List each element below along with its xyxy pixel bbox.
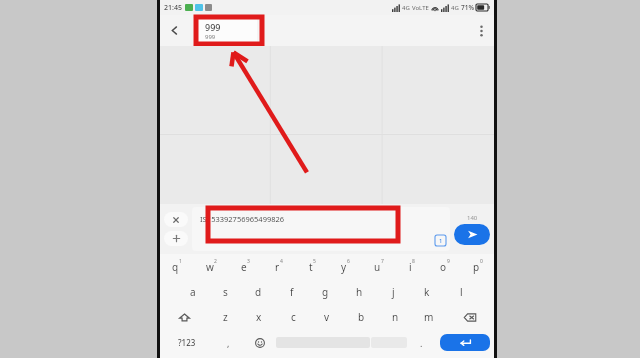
staticText: 6 xyxy=(347,258,350,265)
staticText: s xyxy=(223,285,228,299)
button[interactable]: z xyxy=(208,304,242,330)
button[interactable]: u xyxy=(362,254,395,279)
staticText: a xyxy=(190,285,196,299)
button[interactable]: f xyxy=(275,279,308,304)
staticText: b xyxy=(358,310,365,324)
staticText: 9 xyxy=(447,258,450,265)
button[interactable]: q xyxy=(160,254,194,279)
staticText: 1 xyxy=(439,237,443,245)
staticText: 8 xyxy=(412,258,415,265)
button[interactable]: b xyxy=(344,304,378,330)
button[interactable]: m xyxy=(412,304,446,330)
button[interactable]: Emoji xyxy=(243,330,276,355)
staticText: m xyxy=(424,310,434,324)
button[interactable]: t xyxy=(296,254,329,279)
button[interactable]: n xyxy=(378,304,412,330)
button[interactable]: Backspace xyxy=(446,304,494,330)
staticText: d xyxy=(255,285,262,299)
staticText: 3 xyxy=(247,258,250,265)
button[interactable]: x xyxy=(242,304,276,330)
staticText: 4G xyxy=(402,4,410,12)
staticText: g xyxy=(322,285,329,299)
button[interactable]: Shift xyxy=(160,304,208,330)
button[interactable]: w xyxy=(194,254,228,279)
staticText: u xyxy=(374,260,381,274)
button[interactable]: j xyxy=(376,279,410,304)
staticText: 1 xyxy=(179,258,182,265)
button[interactable]: Send xyxy=(454,224,490,245)
staticText: e xyxy=(241,260,247,274)
staticText: 4 xyxy=(280,258,283,265)
staticText: 71% xyxy=(461,3,474,12)
staticText: l xyxy=(460,285,463,299)
staticText: c xyxy=(291,310,296,324)
button[interactable]: ?123 xyxy=(160,330,214,355)
staticText: f xyxy=(290,285,294,299)
button[interactable]: ISI 53392756965499826 xyxy=(192,207,450,251)
button[interactable]: c xyxy=(276,304,310,330)
button[interactable]: e xyxy=(228,254,262,279)
button[interactable]: o xyxy=(428,254,461,279)
staticText: VoLTE xyxy=(412,4,429,12)
button[interactable]: y xyxy=(329,254,362,279)
button[interactable]: d xyxy=(242,279,275,304)
staticText: q xyxy=(172,260,179,274)
button[interactable]: k xyxy=(410,279,444,304)
button[interactable]: h xyxy=(342,279,376,304)
staticText: 21:45 xyxy=(164,3,182,13)
button[interactable]: Add attachment xyxy=(164,231,188,246)
button[interactable]: l xyxy=(444,279,478,304)
staticText: 7 xyxy=(381,258,384,265)
staticText: p xyxy=(473,260,480,274)
staticText: ?123 xyxy=(178,337,196,348)
button[interactable]: Back xyxy=(160,15,188,46)
staticText: 2 xyxy=(214,258,217,265)
staticText: n xyxy=(392,310,399,324)
button[interactable]: s xyxy=(209,279,242,304)
staticText: k xyxy=(424,285,430,299)
staticText: . xyxy=(420,337,423,349)
button[interactable]: Expand xyxy=(164,212,188,227)
staticText: 140 xyxy=(467,214,478,222)
button[interactable]: 999 xyxy=(193,18,257,44)
staticText: r xyxy=(275,260,280,274)
staticText: x xyxy=(256,310,262,324)
staticText: z xyxy=(223,310,228,324)
button[interactable]: g xyxy=(308,279,342,304)
button[interactable]: , xyxy=(214,330,243,355)
button[interactable]: . xyxy=(407,330,436,355)
staticText: 4G xyxy=(451,4,459,12)
button[interactable]: Enter xyxy=(440,334,490,351)
button[interactable]: v xyxy=(310,304,344,330)
staticText: y xyxy=(341,260,347,274)
staticText: 5 xyxy=(313,258,316,265)
button[interactable]: a xyxy=(176,279,209,304)
button[interactable]: r xyxy=(262,254,296,279)
staticText: i xyxy=(409,260,412,274)
button[interactable]: p xyxy=(461,254,494,279)
staticText: v xyxy=(324,310,330,324)
button[interactable]: More options xyxy=(468,15,494,46)
button[interactable]: i xyxy=(395,254,428,279)
staticText: 0 xyxy=(480,258,483,265)
staticText: j xyxy=(392,285,395,299)
staticText: 999 xyxy=(205,21,221,33)
staticText: w xyxy=(206,260,214,274)
staticText: 999 xyxy=(205,33,216,41)
staticText: ISI 53392756965499826 xyxy=(200,214,285,224)
staticText: , xyxy=(227,337,230,349)
button[interactable]: SMS mode xyxy=(435,235,446,246)
staticText: h xyxy=(356,285,363,299)
staticText: t xyxy=(309,260,313,274)
staticText: o xyxy=(440,260,447,274)
